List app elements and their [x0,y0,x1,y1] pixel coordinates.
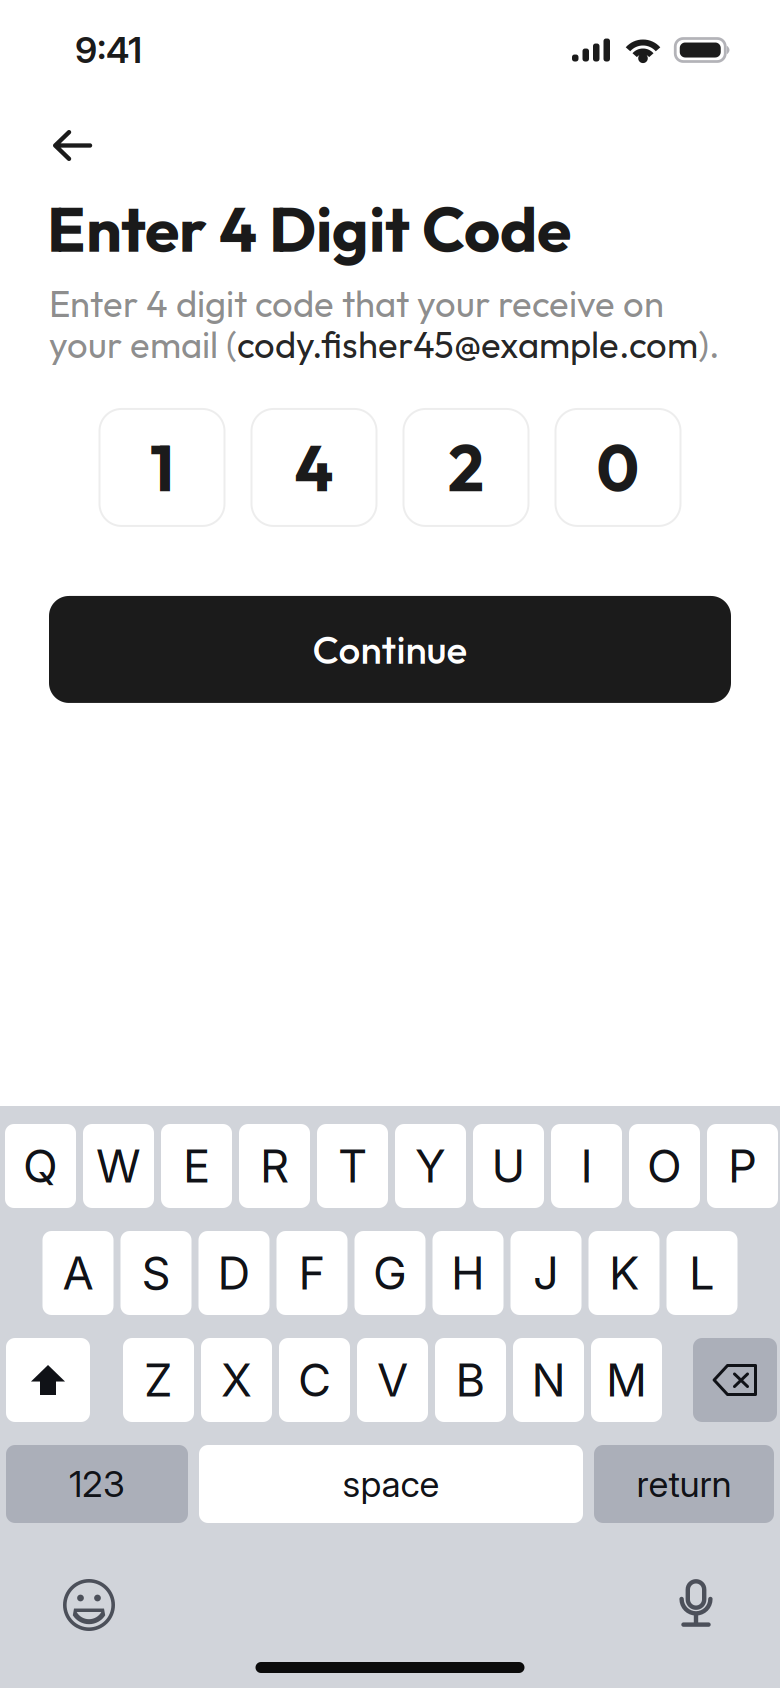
button[interactable]: N [513,1338,584,1422]
button[interactable]: Shift [6,1338,90,1422]
button[interactable]: space [199,1445,583,1523]
staticText: space [342,1462,439,1506]
button[interactable]: S [120,1231,191,1315]
button[interactable]: X [201,1338,272,1422]
staticText: S [141,1246,170,1300]
staticText: O [647,1139,682,1193]
button[interactable]: J [510,1231,581,1315]
button[interactable]: L [666,1231,737,1315]
staticText: Continue [312,625,467,674]
button[interactable]: P [707,1124,778,1208]
staticText: C [298,1353,331,1407]
staticText: P [728,1139,757,1193]
button[interactable]: Z [123,1338,194,1422]
staticText: Y [415,1139,446,1193]
button[interactable]: U [473,1124,544,1208]
button[interactable]: 2 [402,408,529,527]
button[interactable]: Y [395,1124,466,1208]
button[interactable]: W [83,1124,154,1208]
staticText: your email ( [49,321,237,367]
staticText: Q [23,1139,58,1193]
staticText: G [373,1246,407,1300]
staticText: H [451,1246,485,1300]
staticText: T [338,1139,367,1193]
staticText: Enter 4 Digit Code [47,189,571,268]
staticText: Enter 4 digit code that your receive on [49,280,664,326]
button[interactable]: A [42,1231,113,1315]
button[interactable]: I [551,1124,622,1208]
staticText: 9:41 [75,28,142,72]
staticText: N [531,1353,565,1407]
staticText: J [533,1246,559,1300]
staticText: F [298,1246,325,1300]
button[interactable]: K [588,1231,659,1315]
button[interactable]: F [276,1231,347,1315]
staticText: 0 [596,427,639,508]
staticText: I [580,1139,592,1193]
button[interactable]: E [161,1124,232,1208]
button[interactable]: M [591,1338,662,1422]
button[interactable]: B [435,1338,506,1422]
staticText: V [377,1353,408,1407]
button[interactable]: H [432,1231,503,1315]
button[interactable]: G [354,1231,425,1315]
staticText: 1 [150,427,174,508]
staticText: Z [144,1353,173,1407]
staticText: L [689,1246,715,1300]
button[interactable]: 123 [6,1445,188,1523]
button[interactable]: Back [46,123,99,168]
button[interactable]: Emoji keyboard [62,1578,116,1632]
staticText: U [491,1139,525,1193]
button[interactable]: C [279,1338,350,1422]
staticText: 4 [294,427,333,508]
button[interactable]: Dictate [679,1577,713,1633]
button[interactable]: 0 [554,408,681,527]
button[interactable]: Continue [49,596,731,703]
button[interactable]: V [357,1338,428,1422]
button[interactable]: T [317,1124,388,1208]
staticText: ). [698,321,720,367]
staticText: return [636,1462,731,1506]
staticText: B [455,1353,485,1407]
button[interactable]: Delete [693,1338,777,1422]
staticText: 123 [69,1462,125,1506]
button[interactable]: Q [5,1124,76,1208]
button[interactable]: 4 [250,408,377,527]
button[interactable]: O [629,1124,700,1208]
button[interactable]: D [198,1231,269,1315]
button[interactable]: 1 [98,408,225,527]
button[interactable]: return [594,1445,774,1523]
staticText: R [260,1139,289,1193]
staticText: 2 [448,427,484,508]
staticText: A [62,1246,93,1300]
staticText: cody.fisher45@example.com [237,321,698,367]
staticText: W [96,1139,141,1193]
staticText: D [217,1246,250,1300]
staticText: E [183,1139,210,1193]
staticText: X [221,1353,252,1407]
staticText: M [606,1353,647,1407]
staticText: K [609,1246,639,1300]
button[interactable]: R [239,1124,310,1208]
